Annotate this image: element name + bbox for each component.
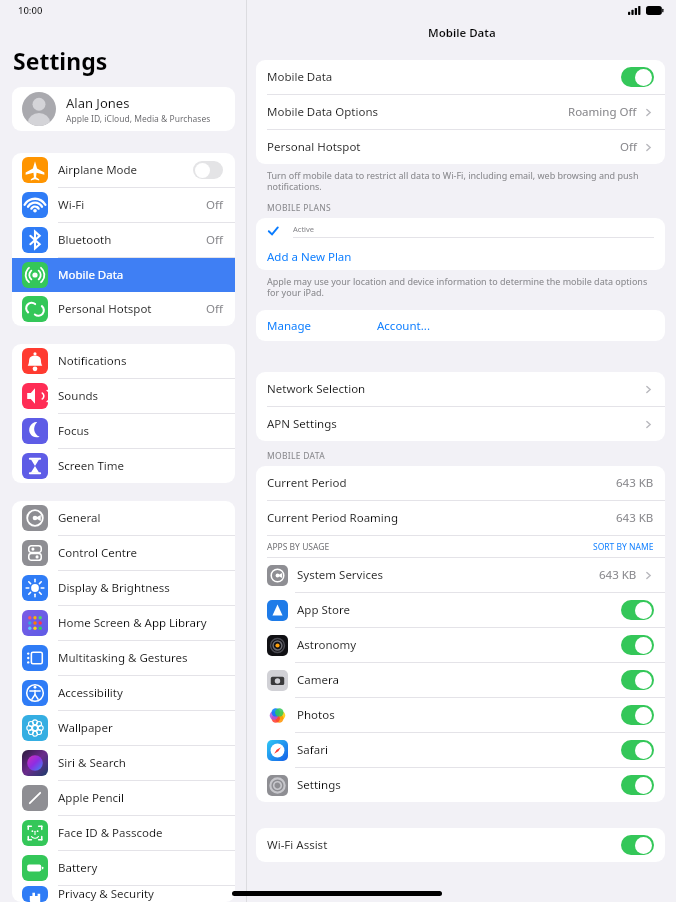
staticText: Add a New Plan: [267, 249, 352, 265]
staticText: Apple may use your location and device i…: [267, 275, 651, 299]
button[interactable]: Active: [256, 218, 665, 244]
staticText: Camera: [297, 672, 339, 688]
button[interactable]: General: [12, 501, 235, 535]
button[interactable]: Safari: [256, 733, 665, 767]
staticText: Siri & Search: [58, 755, 126, 771]
button[interactable]: Settings: [256, 768, 665, 802]
staticText: General: [58, 510, 101, 526]
button[interactable]: Alan Jones: [12, 87, 235, 131]
staticText: Astronomy: [297, 637, 357, 653]
staticText: Airplane Mode: [58, 162, 138, 178]
button[interactable]: Toggle: [621, 705, 654, 725]
button[interactable]: Airplane Mode: [12, 153, 235, 187]
staticText: Mobile Data: [58, 267, 124, 283]
staticText: Off: [206, 301, 223, 317]
button[interactable]: Control Centre: [12, 536, 235, 570]
staticText: Personal Hotspot: [58, 301, 152, 317]
staticText: Network Selection: [267, 381, 366, 397]
staticText: Battery: [58, 860, 98, 876]
button[interactable]: Astronomy: [256, 628, 665, 662]
staticText: 643 KB: [616, 475, 654, 491]
button[interactable]: Screen Time: [12, 449, 235, 483]
button[interactable]: Privacy & Security: [12, 886, 235, 902]
staticText: Sounds: [58, 388, 99, 404]
button[interactable]: Add a New Plan: [256, 244, 665, 270]
staticText: Focus: [58, 423, 90, 439]
button[interactable]: Mobile Data: [256, 60, 665, 94]
button[interactable]: Toggle: [621, 740, 654, 760]
button[interactable]: APN Settings: [256, 407, 665, 441]
button[interactable]: Accessibility: [12, 676, 235, 710]
staticText: App Store: [297, 602, 350, 618]
staticText: 10:00: [18, 4, 43, 17]
staticText: Settings: [297, 777, 341, 793]
staticText: Notifications: [58, 353, 127, 369]
button[interactable]: Wallpaper: [12, 711, 235, 745]
staticText: Mobile Data Options: [267, 104, 379, 120]
staticText: Apple Pencil: [58, 790, 124, 806]
staticText: APN Settings: [267, 416, 337, 432]
button[interactable]: Toggle: [621, 670, 654, 690]
button[interactable]: Multitasking & Gestures: [12, 641, 235, 675]
button[interactable]: Display & Brightness: [12, 571, 235, 605]
staticText: Mobile Data: [428, 25, 496, 41]
staticText: Settings: [13, 45, 108, 76]
button[interactable]: Personal Hotspot: [256, 130, 665, 164]
staticText: APPS BY USAGE: [267, 541, 330, 553]
staticText: 643 KB: [616, 510, 654, 526]
staticText: Alan Jones: [66, 94, 130, 112]
staticText: Active: [293, 224, 315, 234]
staticText: Apple ID, iCloud, Media & Purchases: [66, 113, 211, 125]
staticText: Photos: [297, 707, 335, 723]
button[interactable]: Personal Hotspot: [12, 292, 235, 326]
button[interactable]: Siri & Search: [12, 746, 235, 780]
staticText: Home Screen & App Library: [58, 615, 207, 631]
button[interactable]: Mobile Data: [12, 258, 235, 292]
button[interactable]: Photos: [256, 698, 665, 732]
button[interactable]: Apple Pencil: [12, 781, 235, 815]
button[interactable]: Face ID & Passcode: [12, 816, 235, 850]
staticText: Mobile Data: [267, 69, 333, 85]
button[interactable]: Notifications: [12, 344, 235, 378]
staticText: Wi-Fi: [58, 197, 85, 213]
staticText: Privacy & Security: [58, 886, 154, 902]
button[interactable]: Current Period Roaming: [256, 501, 665, 535]
button[interactable]: Toggle: [621, 635, 654, 655]
button[interactable]: Bluetooth: [12, 223, 235, 257]
button[interactable]: Toggle: [621, 775, 654, 795]
button[interactable]: Wi-Fi Assist: [256, 828, 665, 862]
button[interactable]: Toggle: [621, 835, 654, 855]
button[interactable]: Home Screen & App Library: [12, 606, 235, 640]
staticText: Display & Brightness: [58, 580, 170, 596]
button[interactable]: Toggle: [621, 67, 654, 87]
staticText: Personal Hotspot: [267, 139, 361, 155]
button[interactable]: Battery: [12, 851, 235, 885]
staticText: MOBILE PLANS: [267, 202, 331, 214]
button[interactable]: Focus: [12, 414, 235, 448]
button[interactable]: Mobile Data Options: [256, 95, 665, 129]
button[interactable]: Network Selection: [256, 372, 665, 406]
button[interactable]: Manage: [267, 318, 311, 334]
staticText: MOBILE DATA: [267, 450, 325, 462]
staticText: Manage: [267, 318, 311, 334]
button[interactable]: System Services: [256, 558, 665, 592]
staticText: Off: [206, 232, 223, 248]
button[interactable]: SORT BY NAME: [593, 541, 654, 553]
staticText: Accessibility: [58, 685, 123, 701]
staticText: System Services: [297, 567, 383, 583]
staticText: Off: [206, 197, 223, 213]
staticText: Current Period: [267, 475, 347, 491]
staticText: Multitasking & Gestures: [58, 650, 188, 666]
button[interactable]: Camera: [256, 663, 665, 697]
staticText: Control Centre: [58, 545, 137, 561]
staticText: Account...: [377, 318, 430, 334]
button[interactable]: Sounds: [12, 379, 235, 413]
button[interactable]: Account...: [377, 318, 430, 334]
button[interactable]: Toggle: [193, 161, 223, 179]
button[interactable]: App Store: [256, 593, 665, 627]
staticText: Face ID & Passcode: [58, 825, 163, 841]
button[interactable]: Toggle: [621, 600, 654, 620]
button[interactable]: Current Period: [256, 466, 665, 500]
staticText: Bluetooth: [58, 232, 112, 248]
button[interactable]: Wi-Fi: [12, 188, 235, 222]
